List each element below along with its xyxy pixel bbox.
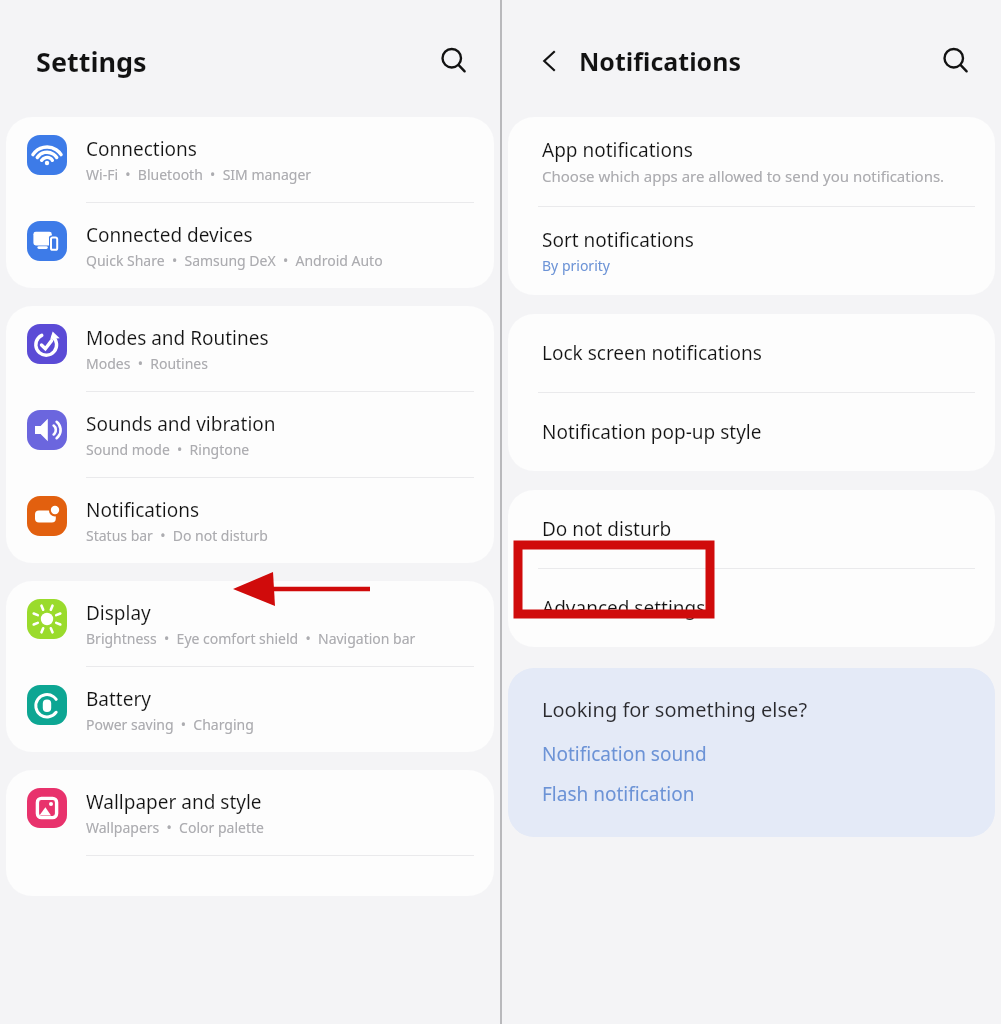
button[interactable]: Sort notifications [508,207,995,295]
staticText: Connections [86,136,197,162]
staticText: Modes • Routines [86,354,208,373]
staticText: Choose which apps are allowed to send yo… [542,166,945,186]
staticText: Do not disturb [542,516,672,542]
button[interactable]: Notification sound [542,741,707,767]
button[interactable]: Display [6,581,494,666]
staticText: Flash notification [542,781,695,807]
staticText: Brightness • Eye comfort shield • Naviga… [86,629,416,648]
staticText: Status bar • Do not disturb [86,526,268,545]
button[interactable]: Modes and Routines [6,306,494,391]
staticText: Display [86,600,151,626]
staticText: Settings [36,43,147,80]
button[interactable]: Search [934,39,978,83]
button[interactable]: Connected devices [6,203,494,288]
button[interactable]: Wallpaper and style [6,770,494,855]
button[interactable]: Search [432,39,476,83]
staticText: Wi-Fi • Bluetooth • SIM manager [86,165,312,184]
staticText: Modes and Routines [86,325,269,351]
button[interactable]: Sounds and vibration [6,392,494,477]
staticText: Wallpaper and style [86,789,262,815]
staticText: Advanced settings [542,595,706,621]
staticText: Sort notifications [542,227,694,253]
button[interactable]: Advanced settings [508,569,995,647]
staticText: Quick Share • Samsung DeX • Android Auto [86,251,383,270]
button[interactable]: Flash notification [542,781,695,807]
staticText: Looking for something else? [542,696,808,723]
staticText: Notifications [579,44,742,78]
button[interactable]: Lock screen notifications [508,314,995,392]
staticText: Notifications [86,497,200,523]
staticText: Wallpapers • Color palette [86,818,264,837]
button[interactable]: Connections [6,117,494,202]
staticText: Sounds and vibration [86,411,276,437]
staticText: Notification sound [542,741,707,767]
staticText: Notification pop-up style [542,419,762,445]
staticText: Battery [86,686,151,712]
button[interactable]: Battery [6,667,494,752]
button[interactable]: Do not disturb [508,490,995,568]
button[interactable]: Back [530,41,570,81]
staticText: Connected devices [86,222,253,248]
button[interactable]: App notifications [508,117,995,206]
button[interactable]: Notification pop-up style [508,393,995,471]
staticText: Power saving • Charging [86,715,254,734]
staticText: App notifications [542,137,693,163]
button[interactable]: Notifications [6,478,494,563]
staticText: By priority [542,256,610,275]
staticText: Sound mode • Ringtone [86,440,250,459]
staticText: Lock screen notifications [542,340,762,366]
